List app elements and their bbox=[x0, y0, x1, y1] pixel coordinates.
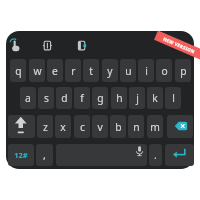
staticText: w bbox=[33, 64, 42, 78]
staticText: , bbox=[43, 148, 46, 162]
staticText: . bbox=[154, 148, 157, 162]
button[interactable]: s bbox=[38, 87, 54, 109]
button[interactable]: 12# bbox=[8, 144, 34, 166]
button[interactable]: f bbox=[74, 87, 90, 109]
button[interactable]: n bbox=[128, 115, 144, 138]
staticText: r bbox=[71, 64, 76, 78]
button[interactable]: d bbox=[56, 87, 72, 109]
staticText: n bbox=[133, 120, 140, 134]
staticText: b bbox=[115, 120, 122, 134]
button[interactable]: q bbox=[10, 59, 26, 82]
button[interactable]: , bbox=[36, 144, 53, 166]
button[interactable]: w bbox=[29, 59, 45, 82]
button[interactable]: e bbox=[47, 59, 63, 82]
staticText: l bbox=[172, 91, 175, 105]
button[interactable]: r bbox=[65, 59, 81, 82]
button[interactable] bbox=[73, 37, 90, 54]
staticText: NEW VERSION bbox=[162, 35, 196, 54]
staticText: x bbox=[60, 120, 66, 134]
button[interactable]: o bbox=[156, 59, 172, 82]
staticText: s bbox=[44, 91, 49, 105]
button[interactable]: t bbox=[83, 59, 99, 82]
button[interactable]: h bbox=[111, 87, 127, 109]
button[interactable]: c bbox=[74, 115, 90, 138]
button[interactable]: i bbox=[138, 59, 154, 82]
button[interactable]: b bbox=[110, 115, 126, 138]
staticText: d bbox=[61, 91, 68, 105]
staticText: t bbox=[89, 64, 93, 78]
staticText: u bbox=[125, 64, 132, 78]
staticText: q bbox=[15, 64, 22, 78]
button[interactable] bbox=[167, 115, 193, 138]
button[interactable] bbox=[39, 37, 56, 54]
staticText: f bbox=[80, 91, 84, 105]
staticText: j bbox=[136, 91, 139, 105]
staticText: h bbox=[116, 91, 123, 105]
staticText: v bbox=[97, 120, 103, 134]
button[interactable] bbox=[165, 144, 194, 166]
button[interactable] bbox=[8, 115, 35, 138]
button[interactable]: l bbox=[165, 87, 181, 109]
staticText: k bbox=[152, 91, 158, 105]
button[interactable]: a bbox=[20, 87, 36, 109]
staticText: e bbox=[52, 64, 58, 78]
button[interactable] bbox=[56, 144, 147, 166]
staticText: 12# bbox=[14, 150, 28, 160]
staticText: m bbox=[150, 120, 160, 134]
button[interactable]: v bbox=[92, 115, 108, 138]
button[interactable]: m bbox=[147, 115, 163, 138]
staticText: y bbox=[107, 64, 113, 78]
staticText: z bbox=[43, 120, 48, 134]
button[interactable]: x bbox=[55, 115, 71, 138]
staticText: i bbox=[145, 64, 148, 78]
button[interactable]: g bbox=[92, 87, 108, 109]
button[interactable]: NEW VERSION bbox=[154, 30, 200, 59]
button[interactable]: p bbox=[175, 59, 191, 82]
button[interactable]: z bbox=[37, 115, 53, 138]
staticText: o bbox=[161, 64, 168, 78]
staticText: c bbox=[80, 120, 85, 134]
button[interactable]: . bbox=[149, 144, 162, 166]
button[interactable]: u bbox=[120, 59, 136, 82]
staticText: g bbox=[97, 91, 104, 105]
button[interactable]: y bbox=[102, 59, 118, 82]
button[interactable]: j bbox=[129, 87, 145, 109]
button[interactable]: k bbox=[147, 87, 163, 109]
staticText: p bbox=[180, 64, 187, 78]
button[interactable] bbox=[9, 37, 26, 54]
staticText: a bbox=[25, 91, 31, 105]
